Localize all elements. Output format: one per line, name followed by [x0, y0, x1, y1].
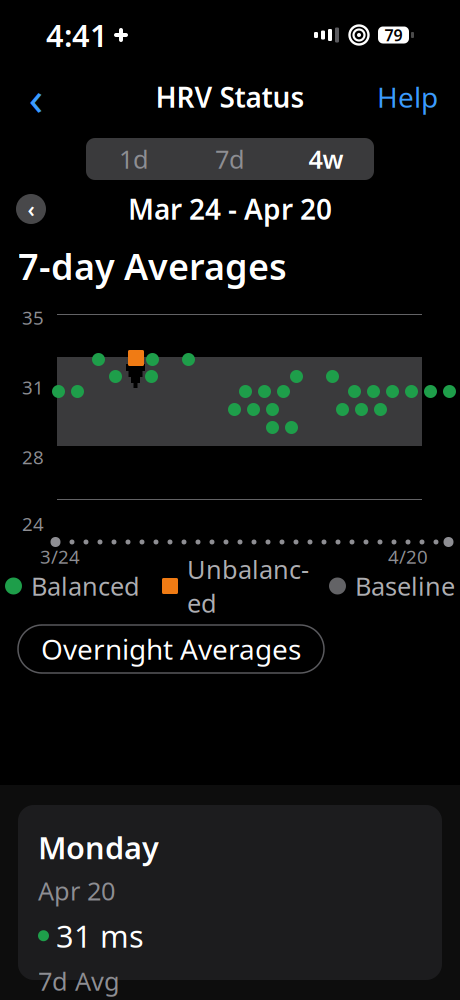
- staticText: 1d: [119, 142, 149, 176]
- staticText: Balanced: [31, 569, 140, 603]
- button[interactable]: Previous period: [11, 189, 51, 229]
- staticText: 3/24: [40, 544, 80, 569]
- button[interactable]: Help: [367, 73, 448, 121]
- staticText: Mar 24 - Apr 20: [128, 190, 332, 228]
- staticText: Apr 20: [38, 874, 115, 907]
- staticText: 7-day Averages: [18, 242, 287, 290]
- staticText: 28: [22, 445, 44, 469]
- button[interactable]: Back: [12, 73, 60, 121]
- staticText: 4:41: [46, 15, 108, 55]
- staticText: Help: [377, 78, 438, 116]
- staticText: 4/20: [388, 544, 428, 569]
- staticText: 79: [384, 24, 402, 46]
- button[interactable]: 7d: [182, 138, 278, 180]
- staticText: Baseline: [355, 569, 455, 603]
- staticText: ‹: [28, 65, 43, 129]
- staticText: Unbalanced: [187, 552, 309, 620]
- staticText: HRV Status: [155, 78, 304, 116]
- button[interactable]: Overnight Averages: [18, 625, 324, 673]
- staticText: 24: [22, 511, 44, 536]
- staticText: 7d: [215, 142, 245, 176]
- staticText: 31 ms: [56, 915, 144, 956]
- staticText: Monday: [38, 827, 159, 868]
- staticText: Overnight Averages: [41, 630, 301, 668]
- staticText: 31: [22, 375, 44, 400]
- staticText: 4w: [308, 142, 343, 176]
- staticText: 7d Avg: [38, 964, 120, 998]
- staticText: ‹: [27, 195, 34, 223]
- button[interactable]: 4w: [278, 138, 374, 180]
- staticText: 35: [22, 305, 44, 330]
- button[interactable]: 1d: [86, 138, 182, 180]
